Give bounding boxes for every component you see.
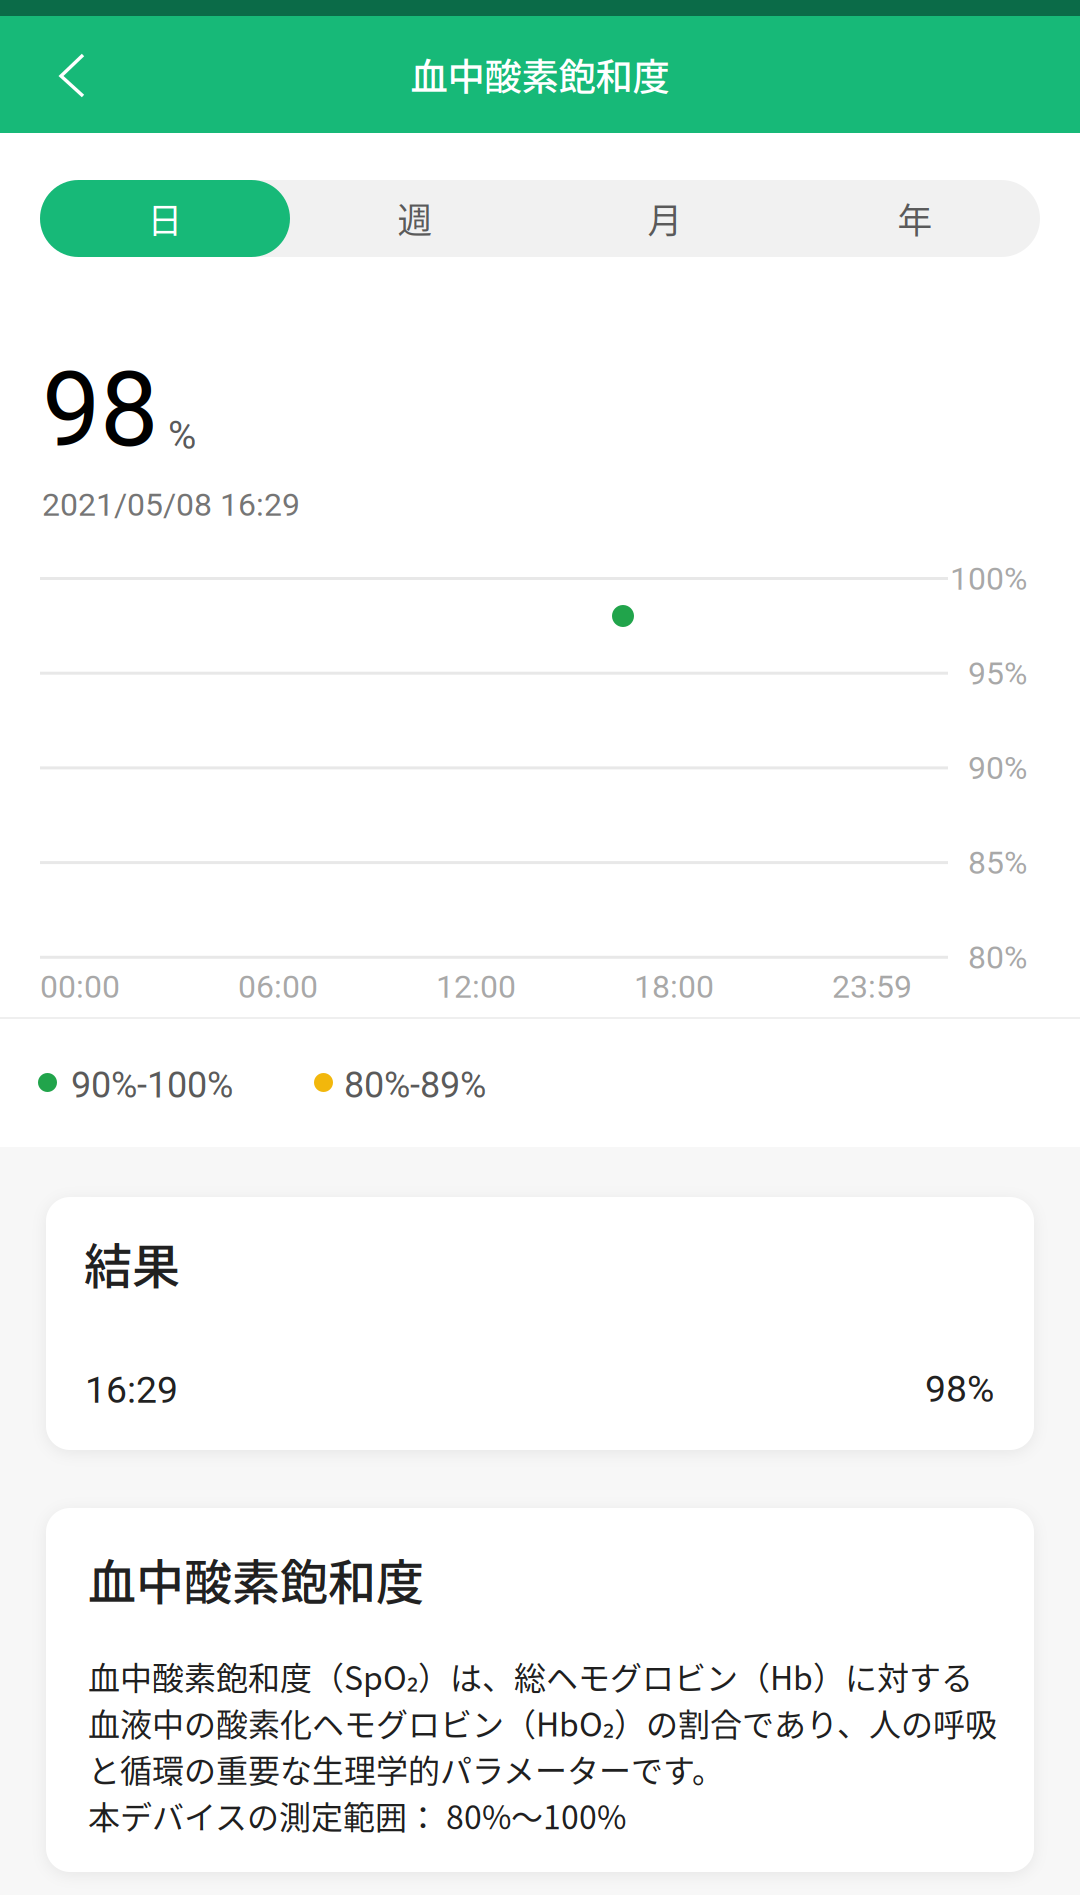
staticText: 月: [647, 193, 682, 244]
staticText: 血中酸素飽和度: [410, 47, 669, 102]
button[interactable]: 年: [790, 180, 1040, 257]
button[interactable]: Back: [0, 16, 140, 133]
staticText: 98: [42, 349, 158, 471]
staticText: 80%: [968, 939, 1027, 976]
staticText: 95%: [968, 655, 1027, 692]
staticText: 年: [897, 193, 932, 244]
staticText: 結果: [84, 1228, 180, 1297]
staticText: 90%: [968, 749, 1027, 787]
staticText: 100%: [950, 560, 1027, 597]
button[interactable]: 日: [40, 180, 290, 257]
staticText: 98%: [925, 1367, 994, 1411]
staticText: 16:29: [85, 1368, 178, 1412]
button[interactable]: 週: [290, 180, 540, 257]
staticText: 00:00: [40, 968, 120, 1005]
staticText: 85%: [968, 844, 1027, 882]
staticText: 90%-100%: [71, 1064, 233, 1106]
staticText: 血中酸素飽和度（SpO₂）は、総ヘモグロビン（Hb）に対する 血液中の酸素化ヘモ…: [88, 1653, 997, 1838]
staticText: 週: [397, 193, 432, 244]
staticText: 23:59: [832, 968, 912, 1005]
staticText: 12:00: [436, 968, 516, 1005]
staticText: 80%-89%: [344, 1064, 486, 1106]
staticText: 血中酸素飽和度: [88, 1544, 424, 1613]
staticText: 2021/05/08 16:29: [42, 486, 300, 523]
staticText: 06:00: [238, 968, 318, 1005]
staticText: 日: [147, 193, 182, 244]
staticText: 18:00: [634, 968, 714, 1005]
staticText: %: [168, 413, 196, 458]
button[interactable]: 月: [540, 180, 790, 257]
